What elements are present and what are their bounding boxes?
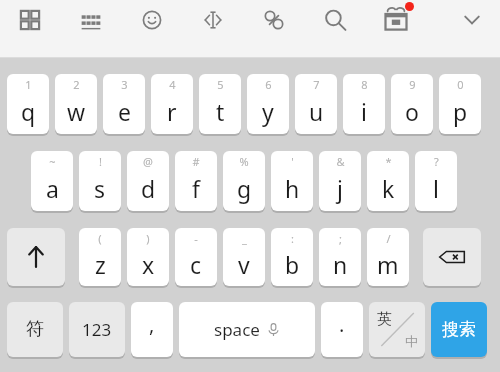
staticText: t <box>216 96 225 127</box>
staticText: g <box>237 173 252 204</box>
button[interactable]: Apps <box>10 0 50 40</box>
staticText: & <box>336 154 345 169</box>
staticText: 4 <box>169 77 176 92</box>
button[interactable]: Move cursor <box>193 0 233 40</box>
staticText: b <box>285 249 300 280</box>
staticText: q <box>21 96 36 127</box>
button[interactable]: 搜索 <box>431 302 487 359</box>
staticText: 0 <box>457 77 464 92</box>
button[interactable]: 5 <box>199 74 241 136</box>
button[interactable]: - <box>175 228 217 288</box>
staticText: . <box>339 311 345 338</box>
button[interactable]: ' <box>271 151 313 213</box>
staticText: l <box>433 173 439 204</box>
staticText: : <box>291 231 294 246</box>
staticText: * <box>385 154 392 169</box>
button[interactable]: Space <box>179 302 315 359</box>
staticText: 符 <box>26 318 44 341</box>
staticText: f <box>192 173 200 204</box>
button[interactable]: , <box>131 302 173 359</box>
staticText: 7 <box>313 77 320 92</box>
staticText: ; <box>339 231 342 246</box>
button[interactable]: Search <box>315 0 355 40</box>
staticText: 123 <box>82 318 112 341</box>
button[interactable]: : <box>271 228 313 288</box>
staticText: 9 <box>409 77 416 92</box>
button[interactable]: 4 <box>151 74 193 136</box>
staticText: / <box>386 231 391 246</box>
staticText: 英 <box>377 310 392 329</box>
staticText: 搜索 <box>442 319 476 340</box>
button[interactable]: Shift <box>7 228 65 288</box>
button[interactable]: 7 <box>295 74 337 136</box>
staticText: @ <box>143 154 153 169</box>
staticText: % <box>239 154 249 169</box>
button[interactable]: % <box>223 151 265 213</box>
staticText: ~ <box>49 154 56 169</box>
staticText: 5 <box>217 77 224 92</box>
button[interactable]: ) <box>127 228 169 288</box>
staticText: n <box>333 249 348 280</box>
button[interactable]: 6 <box>247 74 289 136</box>
staticText: u <box>309 96 324 127</box>
button[interactable]: Keyboard layout <box>71 0 111 40</box>
button[interactable]: Switch language <box>369 302 425 359</box>
button[interactable]: 1 <box>7 74 49 136</box>
staticText: # <box>192 154 200 169</box>
button[interactable]: ! <box>79 151 121 213</box>
button[interactable]: 0 <box>439 74 481 136</box>
staticText: - <box>194 231 198 246</box>
staticText: x <box>142 249 155 280</box>
button[interactable]: 8 <box>343 74 385 136</box>
staticText: a <box>46 173 59 204</box>
staticText: s <box>94 173 106 204</box>
button[interactable]: Backspace <box>423 228 481 288</box>
staticText: d <box>141 173 156 204</box>
staticText: , <box>149 311 155 338</box>
staticText: c <box>190 249 202 280</box>
button[interactable]: @ <box>127 151 169 213</box>
staticText: 1 <box>25 77 32 92</box>
staticText: o <box>405 96 419 127</box>
staticText: e <box>118 96 131 127</box>
staticText: _ <box>242 231 247 246</box>
staticText: p <box>453 96 468 127</box>
staticText: h <box>285 173 300 204</box>
staticText: 6 <box>265 77 272 92</box>
staticText: 2 <box>73 77 80 92</box>
button[interactable]: ( <box>79 228 121 288</box>
staticText: k <box>382 173 395 204</box>
staticText: ? <box>434 154 439 169</box>
staticText: y <box>262 96 274 127</box>
button[interactable]: ; <box>319 228 361 288</box>
staticText: j <box>337 173 343 204</box>
button[interactable]: Emoji <box>132 0 172 40</box>
staticText: r <box>167 96 177 127</box>
button[interactable]: 2 <box>55 74 97 136</box>
button[interactable]: / <box>367 228 409 288</box>
staticText: w <box>67 96 86 127</box>
staticText: z <box>95 249 106 280</box>
button[interactable]: & <box>319 151 361 213</box>
button[interactable]: 123 <box>69 302 125 359</box>
button[interactable]: Attach <box>254 0 294 40</box>
button[interactable]: # <box>175 151 217 213</box>
button[interactable]: ? <box>415 151 457 213</box>
button[interactable]: ~ <box>31 151 73 213</box>
button[interactable]: _ <box>223 228 265 288</box>
staticText: ' <box>291 154 294 169</box>
button[interactable]: 3 <box>103 74 145 136</box>
staticText: 3 <box>121 77 128 92</box>
staticText: i <box>361 96 367 127</box>
staticText: 中 <box>405 333 418 349</box>
staticText: 8 <box>361 77 368 92</box>
button[interactable]: Hide keyboard <box>452 0 492 40</box>
staticText: m <box>377 249 399 280</box>
staticText: v <box>238 249 250 280</box>
button[interactable]: 9 <box>391 74 433 136</box>
button[interactable]: . <box>321 302 363 359</box>
button[interactable]: * <box>367 151 409 213</box>
button[interactable]: 符 <box>7 302 63 359</box>
button[interactable]: Gift <box>376 0 416 40</box>
staticText: space <box>214 318 260 341</box>
